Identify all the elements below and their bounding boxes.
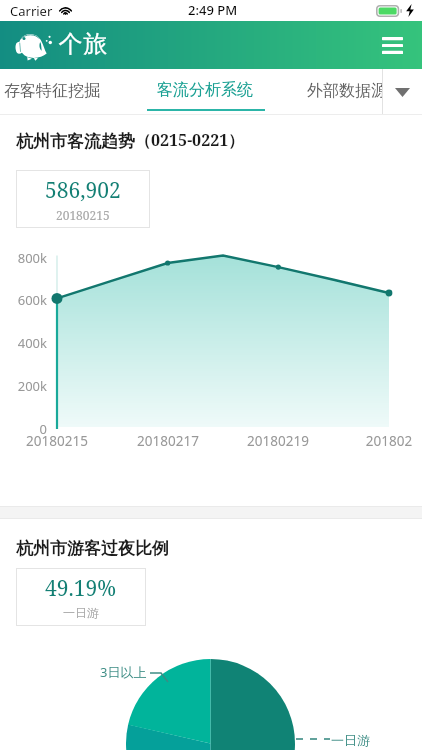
staticText: 20180215 <box>12 432 102 450</box>
button[interactable]: More tabs <box>383 69 422 115</box>
staticText: 20180217 <box>123 432 213 450</box>
staticText: 3日以上 <box>100 663 147 681</box>
button[interactable]: 存客特征挖掘 <box>0 69 118 115</box>
button[interactable]: Menu <box>370 23 414 67</box>
staticText: 49.19% <box>45 574 117 603</box>
staticText: 客流分析系统 <box>157 80 253 100</box>
staticText: 20180215 <box>56 207 110 223</box>
staticText: 800k <box>0 249 47 267</box>
button[interactable]: 49.19% <box>16 568 146 626</box>
staticText: 600k <box>0 291 47 309</box>
staticText: 201802 <box>344 432 422 450</box>
staticText: 一日游 <box>63 605 99 620</box>
staticText: 200k <box>0 377 47 395</box>
staticText: 存客特征挖掘 <box>4 81 100 101</box>
staticText: 400k <box>0 334 47 352</box>
button[interactable]: 外部数据源 <box>292 69 382 115</box>
staticText: 一日游 <box>331 732 370 748</box>
staticText: 个旅 <box>58 29 108 59</box>
staticText: 2:49 PM <box>188 1 238 19</box>
button[interactable]: 586,902 <box>16 170 150 228</box>
staticText: 0 <box>0 420 47 438</box>
staticText: 杭州市游客过夜比例 <box>16 538 169 559</box>
staticText: 586,902 <box>45 176 121 205</box>
staticText: 杭州市客流趋势 <box>16 131 135 152</box>
staticText: （0215-0221） <box>135 129 245 151</box>
button[interactable]: 客流分析系统 <box>144 69 266 115</box>
staticText: 外部数据源 <box>307 81 382 101</box>
staticText: Carrier <box>10 2 53 20</box>
staticText: 20180219 <box>233 432 323 450</box>
